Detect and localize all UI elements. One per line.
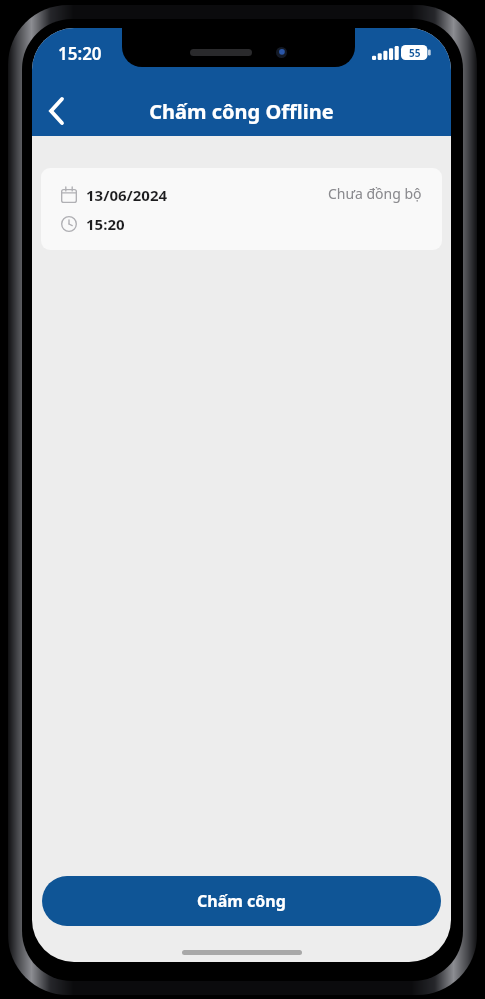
staticText: 13/06/2024: [86, 185, 168, 205]
button[interactable]: Back: [32, 87, 80, 135]
staticText: 55: [409, 46, 421, 60]
staticText: Chấm công: [197, 890, 286, 912]
staticText: Chấm công Offline: [32, 98, 451, 125]
staticText: Chưa đồng bộ: [328, 184, 422, 203]
staticText: 15:20: [86, 214, 125, 234]
button[interactable]: Chấm công: [42, 876, 441, 926]
button[interactable]: 13/06/2024: [41, 168, 442, 250]
staticText: 15:20: [58, 42, 102, 65]
